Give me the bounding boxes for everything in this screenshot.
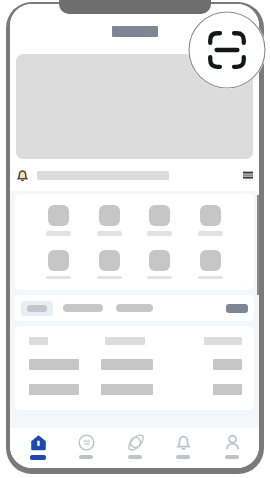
button[interactable] xyxy=(46,205,71,236)
button[interactable] xyxy=(198,250,223,279)
button[interactable] xyxy=(46,250,71,279)
button[interactable]: Summary xyxy=(65,434,107,459)
button[interactable]: Profile xyxy=(211,434,253,459)
button[interactable] xyxy=(147,250,172,279)
button[interactable] xyxy=(29,359,242,370)
button[interactable]: Home xyxy=(17,434,59,460)
button[interactable] xyxy=(63,304,103,312)
button[interactable] xyxy=(116,304,153,312)
button[interactable] xyxy=(29,384,242,395)
button[interactable] xyxy=(147,205,172,236)
button[interactable]: More xyxy=(16,165,253,185)
button[interactable]: Scan xyxy=(188,11,266,89)
button[interactable] xyxy=(97,250,122,279)
button[interactable] xyxy=(16,54,253,159)
other: More xyxy=(243,170,253,180)
button[interactable]: Alerts xyxy=(162,434,204,459)
button[interactable]: Explore xyxy=(114,434,156,459)
button[interactable] xyxy=(226,304,248,313)
button[interactable] xyxy=(21,301,53,316)
button[interactable] xyxy=(198,205,223,236)
button[interactable] xyxy=(97,205,122,236)
